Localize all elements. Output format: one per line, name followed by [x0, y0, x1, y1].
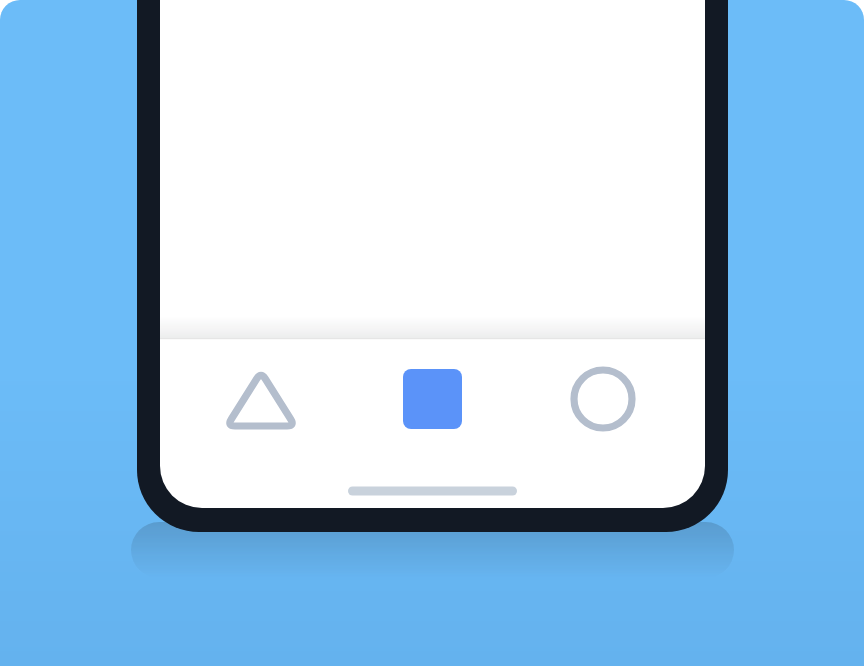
button[interactable]: Shapes — [183, 338, 339, 508]
button[interactable]: Home — [354, 338, 510, 508]
button[interactable]: Profile — [525, 338, 681, 508]
